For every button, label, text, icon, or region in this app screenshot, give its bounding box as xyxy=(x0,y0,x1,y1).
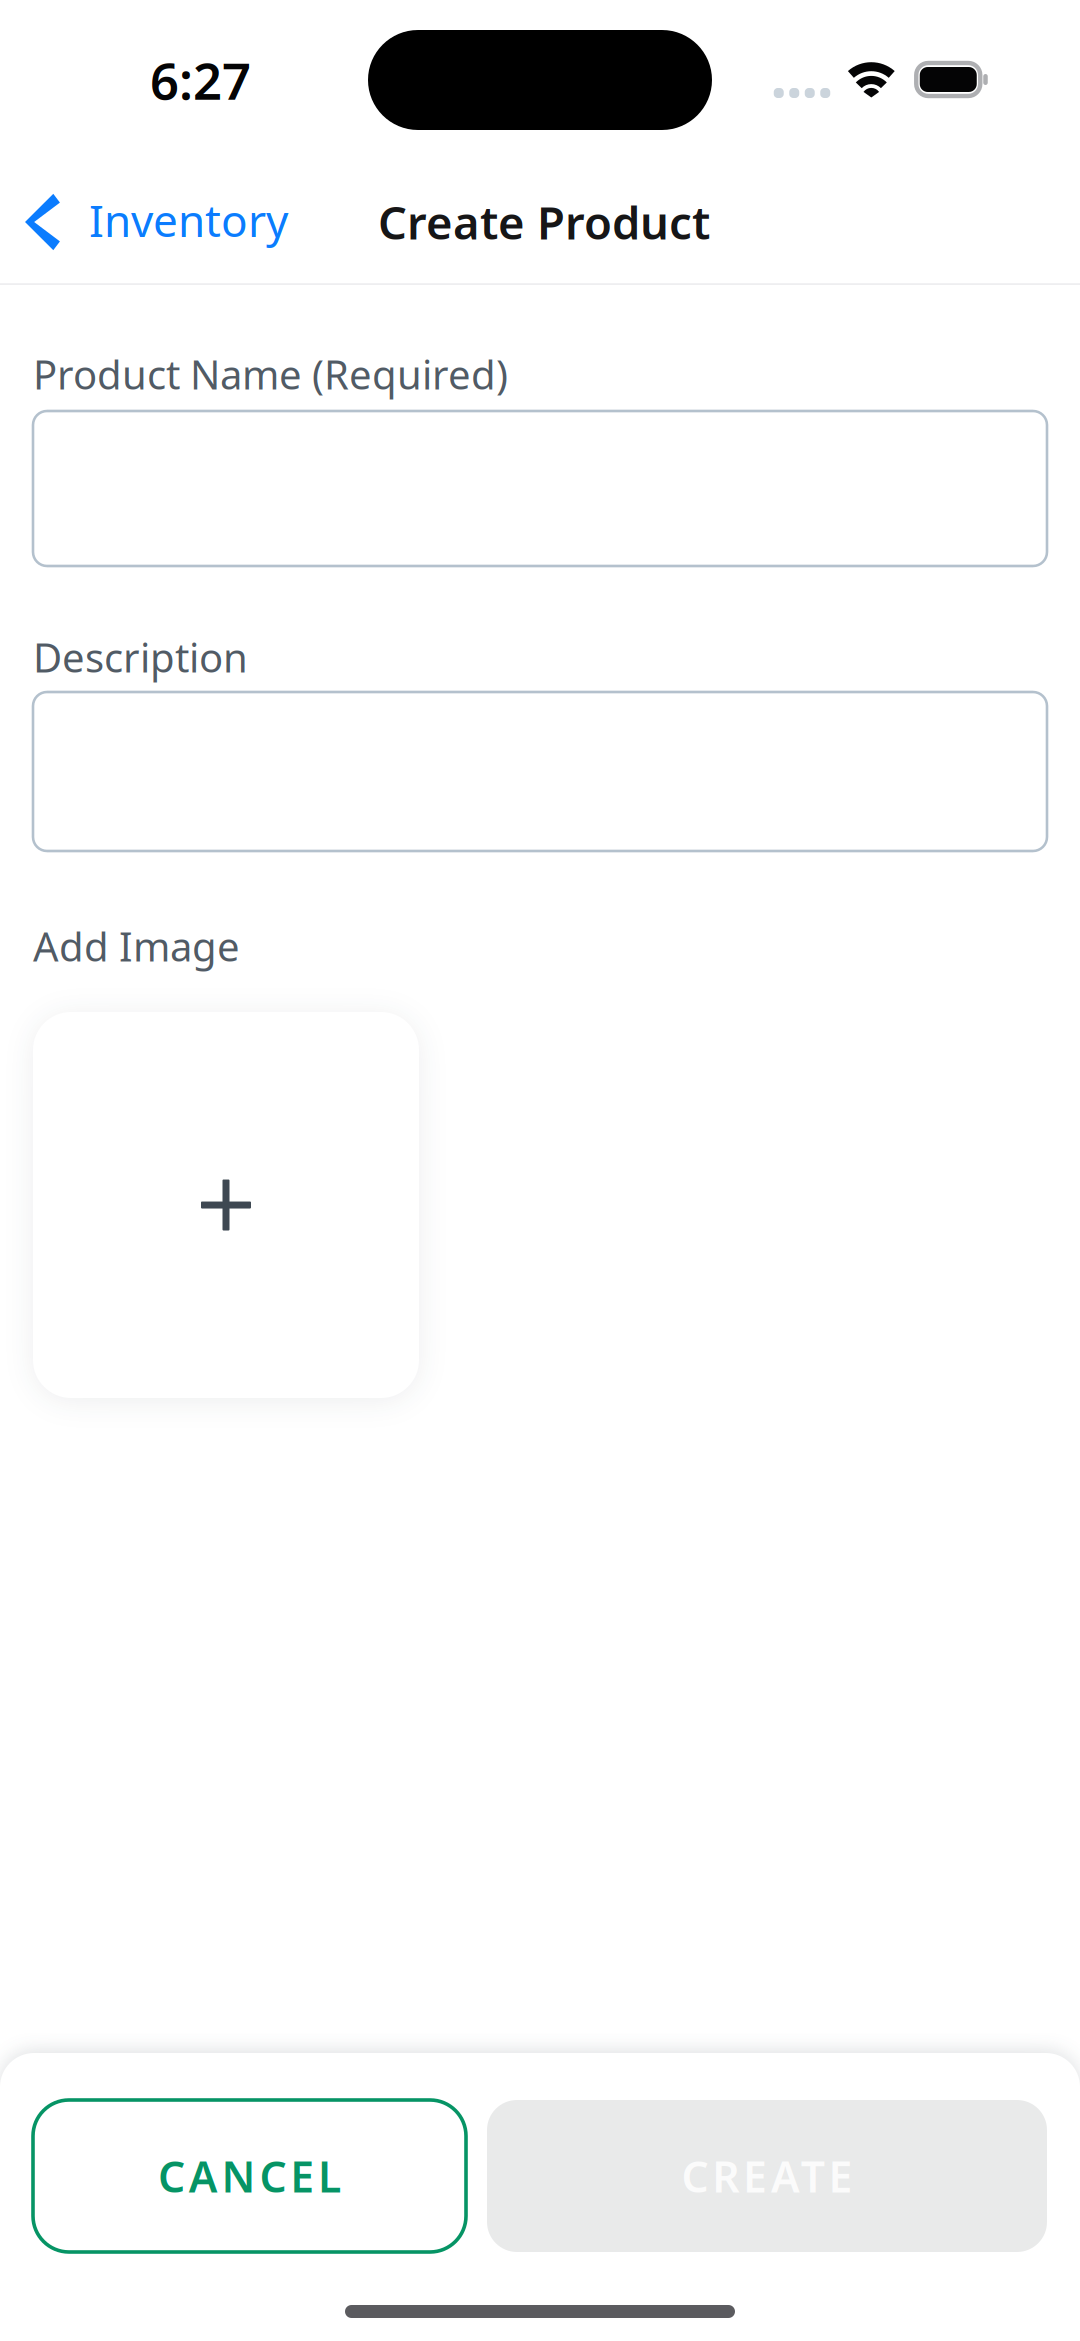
staticText: Product Name (Required) xyxy=(33,347,508,400)
button[interactable]: Add Image xyxy=(33,1012,419,1398)
staticText: Add Image xyxy=(33,919,240,972)
staticText: CREATE xyxy=(681,2148,852,2204)
staticText: 6:27 xyxy=(150,46,251,114)
staticText: Description xyxy=(33,630,248,683)
button[interactable]: CREATE xyxy=(487,2100,1047,2252)
staticText: Create Product xyxy=(378,192,710,252)
staticText: CANCEL xyxy=(158,2148,341,2204)
button[interactable]: Inventory xyxy=(0,166,318,274)
staticText: Inventory xyxy=(89,191,288,249)
button[interactable]: CANCEL xyxy=(33,2100,466,2252)
